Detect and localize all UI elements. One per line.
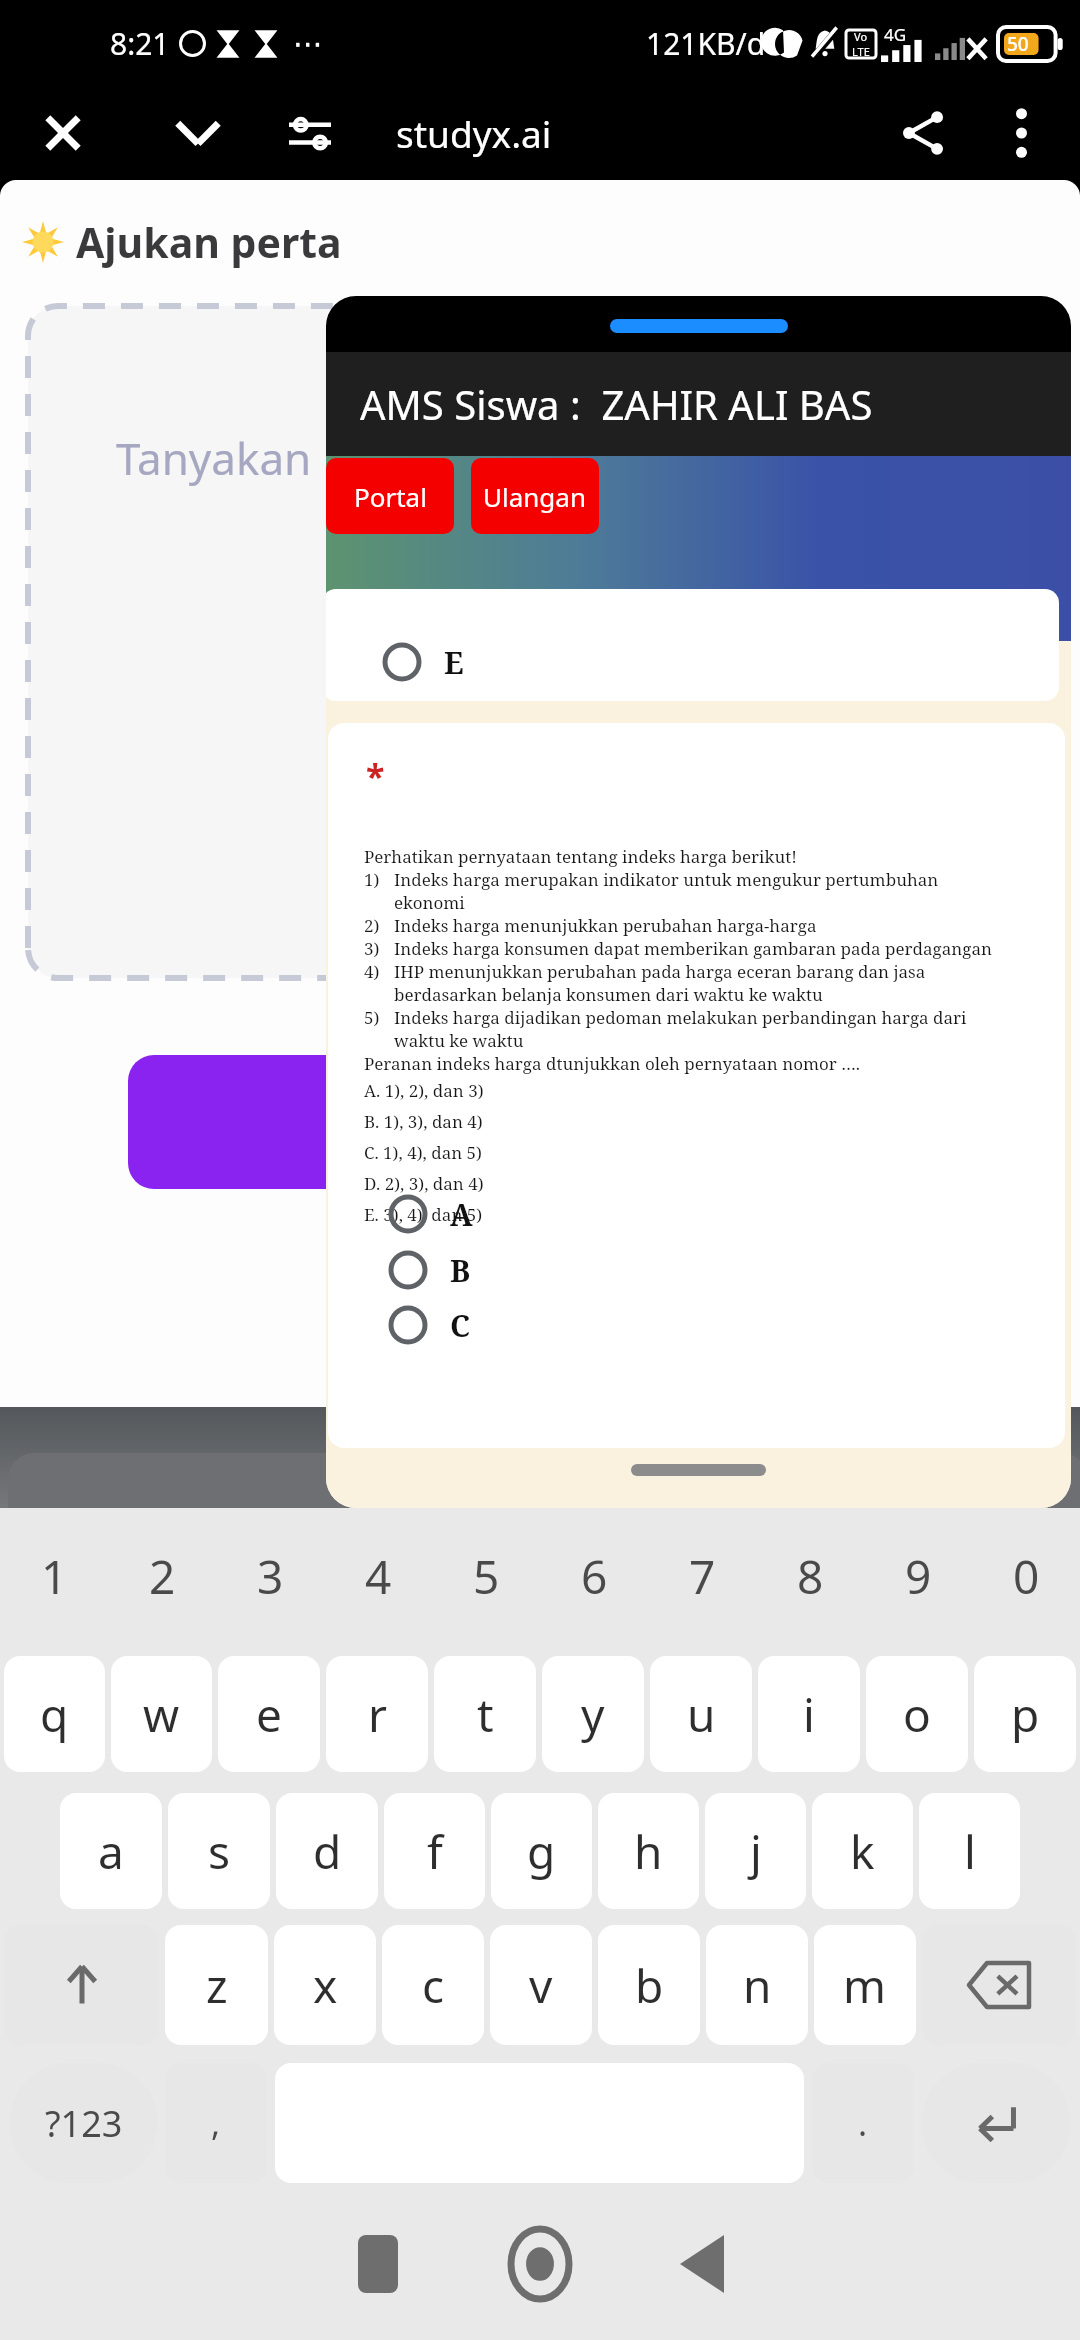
staticText: m — [843, 1954, 887, 2017]
button[interactable]: 0 — [972, 1522, 1080, 1630]
button[interactable]: Share — [878, 88, 968, 178]
button[interactable]: 2 — [108, 1522, 216, 1630]
staticText: Portal — [354, 479, 427, 514]
staticText: 4) — [364, 960, 394, 983]
staticText: s — [208, 1820, 231, 1883]
staticText: 7 — [689, 1545, 716, 1608]
button[interactable]: c — [382, 1925, 484, 2045]
staticText: ⋯ — [293, 26, 323, 61]
staticText: 121KB/d — [646, 23, 766, 64]
staticText: k — [850, 1820, 875, 1883]
button[interactable]: 7 — [648, 1522, 756, 1630]
button[interactable]: 8 — [756, 1522, 864, 1630]
button[interactable]: k — [812, 1793, 913, 1909]
staticText: 3) — [364, 937, 394, 960]
button[interactable]: 6 — [540, 1522, 648, 1630]
staticText: 9 — [905, 1545, 932, 1608]
button[interactable]: z — [165, 1925, 268, 2045]
button[interactable]: i — [758, 1656, 860, 1772]
button[interactable]: Back — [621, 2204, 783, 2324]
staticText: 1 — [41, 1545, 68, 1608]
staticText: * — [366, 753, 385, 799]
button[interactable]: x — [274, 1925, 376, 2045]
staticText: Indeks harga konsumen dapat memberikan g… — [394, 937, 992, 960]
button[interactable]: j — [705, 1793, 806, 1909]
staticText: , — [211, 2100, 221, 2146]
staticText: p — [1011, 1683, 1040, 1746]
button[interactable]: 1 — [0, 1522, 108, 1630]
staticText: 50 — [1007, 31, 1029, 57]
button[interactable]: More options — [976, 88, 1066, 178]
button[interactable]: y — [542, 1656, 644, 1772]
staticText: A — [450, 1194, 473, 1235]
staticText: Tanyakan — [116, 428, 312, 488]
button[interactable]: 5 — [432, 1522, 540, 1630]
button[interactable]: e — [218, 1656, 320, 1772]
button[interactable]: C — [328, 1296, 538, 1354]
button[interactable]: v — [490, 1925, 592, 2045]
staticText: g — [527, 1820, 556, 1883]
staticText: z — [206, 1954, 228, 2017]
button[interactable]: Enter — [922, 2063, 1070, 2183]
button[interactable]: a — [60, 1793, 162, 1909]
staticText: Vo — [854, 29, 868, 44]
button[interactable]: Page info — [265, 88, 355, 178]
button[interactable] — [610, 319, 788, 333]
button[interactable]: A — [328, 1185, 538, 1243]
button[interactable]: l — [919, 1793, 1020, 1909]
staticText: t — [477, 1683, 494, 1746]
staticText: l — [964, 1820, 976, 1883]
staticText: y — [581, 1683, 605, 1746]
button[interactable] — [631, 1464, 766, 1476]
staticText: ?123 — [45, 2099, 123, 2148]
button[interactable]: n — [706, 1925, 808, 2045]
button[interactable]: s — [168, 1793, 270, 1909]
button[interactable]: Backspace — [922, 1925, 1076, 2045]
button[interactable]: E — [326, 633, 532, 691]
button[interactable]: , — [165, 2063, 267, 2183]
button[interactable]: . — [812, 2063, 914, 2183]
button[interactable]: Close — [18, 88, 108, 178]
button[interactable]: r — [326, 1656, 428, 1772]
staticText: 4G — [884, 23, 907, 46]
button[interactable]: g — [491, 1793, 592, 1909]
button[interactable]: o — [866, 1656, 968, 1772]
button[interactable]: 4 — [324, 1522, 432, 1630]
staticText: i — [803, 1683, 815, 1746]
button[interactable]: Downloads — [153, 88, 243, 178]
staticText: Perhatikan pernyataan tentang indeks har… — [364, 845, 797, 868]
button[interactable] — [128, 1055, 548, 1189]
button[interactable]: 9 — [864, 1522, 972, 1630]
button[interactable]: Ulangan — [471, 458, 599, 534]
staticText: 2 — [149, 1545, 176, 1608]
button[interactable]: d — [276, 1793, 378, 1909]
staticText: q — [40, 1683, 69, 1746]
button[interactable]: p — [974, 1656, 1076, 1772]
button[interactable]: B — [328, 1241, 538, 1299]
staticText: d — [313, 1820, 342, 1883]
button[interactable]: 3 — [216, 1522, 324, 1630]
button[interactable]: u — [650, 1656, 752, 1772]
staticText: 3 — [257, 1545, 284, 1608]
button[interactable]: w — [111, 1656, 212, 1772]
staticText: 1) — [364, 868, 394, 891]
button[interactable]: Shift — [4, 1925, 159, 2045]
button[interactable]: f — [384, 1793, 485, 1909]
button[interactable]: m — [814, 1925, 916, 2045]
button[interactable]: q — [4, 1656, 105, 1772]
button[interactable]: t — [434, 1656, 536, 1772]
staticText: AMS Siswa : ZAHIR ALI BAS — [360, 377, 873, 431]
staticText: n — [743, 1954, 772, 2017]
staticText: Ajukan perta — [76, 214, 342, 270]
staticText: E — [444, 642, 464, 683]
button[interactable]: b — [598, 1925, 700, 2045]
button[interactable]: ?123 — [10, 2063, 157, 2183]
button[interactable]: Home — [459, 2204, 621, 2324]
staticText: IHP menunjukkan perubahan pada harga ece… — [394, 960, 926, 1006]
button[interactable]: Recents — [297, 2204, 459, 2324]
button[interactable]: Portal — [326, 458, 454, 534]
button[interactable]: h — [598, 1793, 699, 1909]
staticText: Indeks harga merupakan indikator untuk m… — [394, 868, 939, 914]
staticText: 0 — [1013, 1545, 1040, 1608]
